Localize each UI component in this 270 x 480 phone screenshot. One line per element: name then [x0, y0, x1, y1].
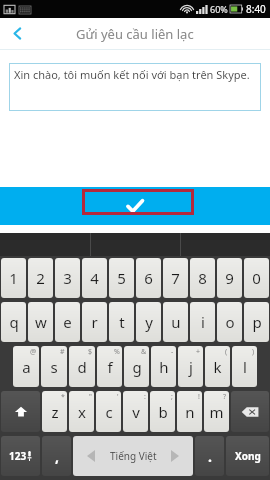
staticText: k: [213, 357, 222, 377]
button[interactable]: Comma: [42, 436, 71, 476]
staticText: p: [252, 312, 262, 332]
staticText: ): [252, 347, 255, 357]
button[interactable]: 8: [190, 258, 215, 298]
button[interactable]: 6: [136, 258, 161, 298]
staticText: j: [189, 357, 193, 377]
button[interactable]: w: [28, 302, 53, 342]
button[interactable]: r: [82, 302, 107, 342]
staticText: #: [60, 347, 65, 357]
staticText: s: [50, 357, 58, 377]
button[interactable]: j: [178, 346, 203, 387]
button[interactable]: d: [69, 346, 95, 387]
button[interactable]: Period: [195, 436, 224, 476]
staticText: m: [209, 402, 224, 422]
button[interactable]: Delete: [231, 391, 269, 432]
staticText: 8:40: [246, 2, 266, 16]
button[interactable]: 3: [55, 258, 80, 298]
staticText: *: [61, 392, 65, 402]
button[interactable]: Shift: [1, 391, 40, 432]
staticText: Xong: [235, 449, 261, 463]
staticText: 8: [198, 268, 207, 288]
staticText: :: [144, 392, 146, 402]
staticText: 4: [90, 268, 99, 288]
button[interactable]: 1: [1, 258, 26, 298]
staticText: c: [105, 402, 113, 422]
button[interactable]: 4: [82, 258, 107, 298]
button[interactable]: 9: [217, 258, 242, 298]
staticText: d: [77, 357, 87, 377]
staticText: 7: [171, 268, 180, 288]
button[interactable]: 2: [28, 258, 53, 298]
button[interactable]: o: [217, 302, 242, 342]
button[interactable]: h: [151, 346, 176, 387]
staticText: 2: [36, 268, 45, 288]
staticText: &: [141, 347, 147, 357]
staticText: !: [198, 392, 200, 402]
button[interactable]: x: [69, 391, 94, 432]
staticText: 5: [117, 268, 126, 288]
button[interactable]: e: [55, 302, 80, 342]
button[interactable]: b: [150, 391, 175, 432]
button[interactable]: f: [97, 346, 122, 387]
staticText: i: [201, 312, 205, 332]
button[interactable]: Confirm: [80, 191, 190, 221]
button[interactable]: Back: [0, 18, 34, 49]
staticText: Xin chào, tôi muốn kết nối với bạn trên …: [14, 67, 250, 82]
staticText: n: [185, 402, 195, 422]
staticText: b: [158, 402, 168, 422]
staticText: u: [171, 312, 181, 332]
staticText: q: [9, 312, 19, 332]
button[interactable]: g: [124, 346, 149, 387]
button[interactable]: 7: [163, 258, 188, 298]
staticText: %: [114, 347, 120, 357]
button[interactable]: 5: [109, 258, 134, 298]
button[interactable]: i: [190, 302, 215, 342]
staticText: 0: [252, 268, 261, 288]
staticText: 9: [225, 268, 234, 288]
button[interactable]: y: [136, 302, 161, 342]
button[interactable]: p: [244, 302, 269, 342]
button[interactable]: Done: [226, 436, 269, 476]
button[interactable]: q: [1, 302, 26, 342]
staticText: .: [208, 447, 212, 466]
staticText: z: [51, 402, 59, 422]
staticText: +: [196, 347, 201, 357]
staticText: ;: [171, 392, 173, 402]
staticText: 6: [144, 268, 153, 288]
staticText: -: [171, 347, 174, 357]
staticText: ': [117, 392, 119, 402]
staticText: Tiếng Việt: [110, 449, 157, 463]
staticText: $: [88, 347, 93, 357]
staticText: h: [159, 357, 169, 377]
button[interactable]: l: [232, 346, 257, 387]
button[interactable]: m: [204, 391, 229, 432]
staticText: a: [22, 357, 31, 377]
staticText: ?: [223, 392, 227, 402]
staticText: e: [63, 312, 72, 332]
button[interactable]: k: [205, 346, 230, 387]
staticText: Gửi yêu cầu liên lạc: [76, 25, 194, 43]
staticText: 60%: [210, 3, 228, 15]
button[interactable]: Xin chào, tôi muốn kết nối với bạn trên …: [9, 63, 261, 111]
button[interactable]: n: [177, 391, 202, 432]
staticText: (: [225, 347, 228, 357]
button[interactable]: Numbers: [1, 436, 40, 476]
staticText: r: [91, 312, 98, 332]
staticText: ,: [55, 447, 59, 466]
button[interactable]: 0: [244, 258, 269, 298]
staticText: 3: [63, 268, 72, 288]
button[interactable]: v: [123, 391, 148, 432]
staticText: 1: [9, 268, 18, 288]
button[interactable]: s: [41, 346, 67, 387]
staticText: w: [35, 312, 47, 332]
button[interactable]: u: [163, 302, 188, 342]
button[interactable]: c: [96, 391, 121, 432]
button[interactable]: Space: [73, 436, 193, 476]
button[interactable]: z: [42, 391, 67, 432]
button[interactable]: t: [109, 302, 134, 342]
staticText: t: [119, 312, 125, 332]
staticText: o: [225, 312, 235, 332]
button[interactable]: a: [13, 346, 39, 387]
staticText: ": [89, 392, 92, 402]
staticText: l: [243, 357, 247, 377]
